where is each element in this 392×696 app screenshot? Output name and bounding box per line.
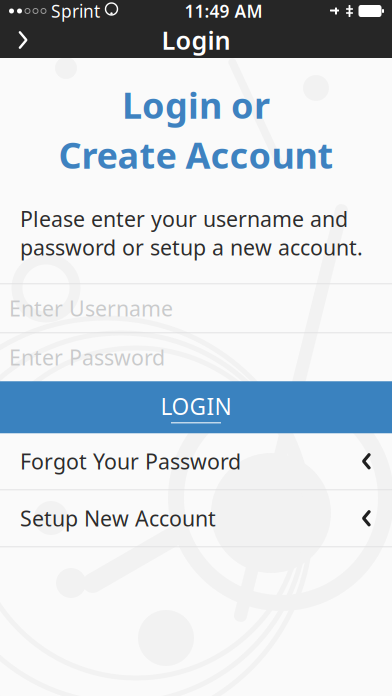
staticText: 11:49 AM xyxy=(184,0,262,22)
staticText: Setup New Account xyxy=(20,504,216,532)
staticText: Enter Username xyxy=(9,294,173,322)
staticText: Please enter your username and password … xyxy=(20,205,363,261)
staticText: Enter Password xyxy=(9,343,165,371)
staticText: Login or xyxy=(122,81,270,129)
staticText: Sprint xyxy=(51,0,100,22)
staticText: Login xyxy=(161,23,230,57)
staticText: LOGIN xyxy=(160,391,231,421)
button[interactable]: LOGIN xyxy=(0,381,392,433)
button[interactable]: Setup New Account xyxy=(0,490,392,546)
staticText: Create Account xyxy=(58,131,333,179)
staticText: Forgot Your Password xyxy=(20,447,241,475)
button[interactable]: Forgot Your Password xyxy=(0,433,392,489)
button[interactable]: Back xyxy=(0,22,46,58)
